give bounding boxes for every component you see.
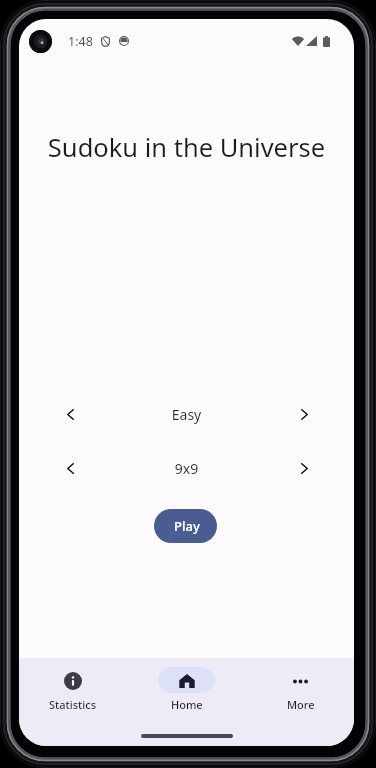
- staticText: Sudoku in the Universe: [19, 130, 354, 165]
- staticText: More: [287, 697, 315, 712]
- staticText: Home: [171, 697, 203, 712]
- button[interactable]: Home: [133, 658, 240, 712]
- button[interactable]: Previous: [56, 400, 84, 428]
- staticText: Easy: [19, 405, 354, 424]
- staticText: 9x9: [19, 459, 354, 478]
- staticText: Statistics: [49, 697, 97, 712]
- staticText: 1:48: [68, 33, 93, 50]
- button[interactable]: Next: [290, 400, 318, 428]
- button[interactable]: Statistics: [19, 658, 126, 712]
- button[interactable]: Previous: [56, 454, 84, 482]
- button[interactable]: More: [247, 658, 354, 712]
- button[interactable]: Next: [290, 454, 318, 482]
- button[interactable]: Play: [154, 509, 217, 543]
- staticText: Play: [174, 517, 200, 535]
